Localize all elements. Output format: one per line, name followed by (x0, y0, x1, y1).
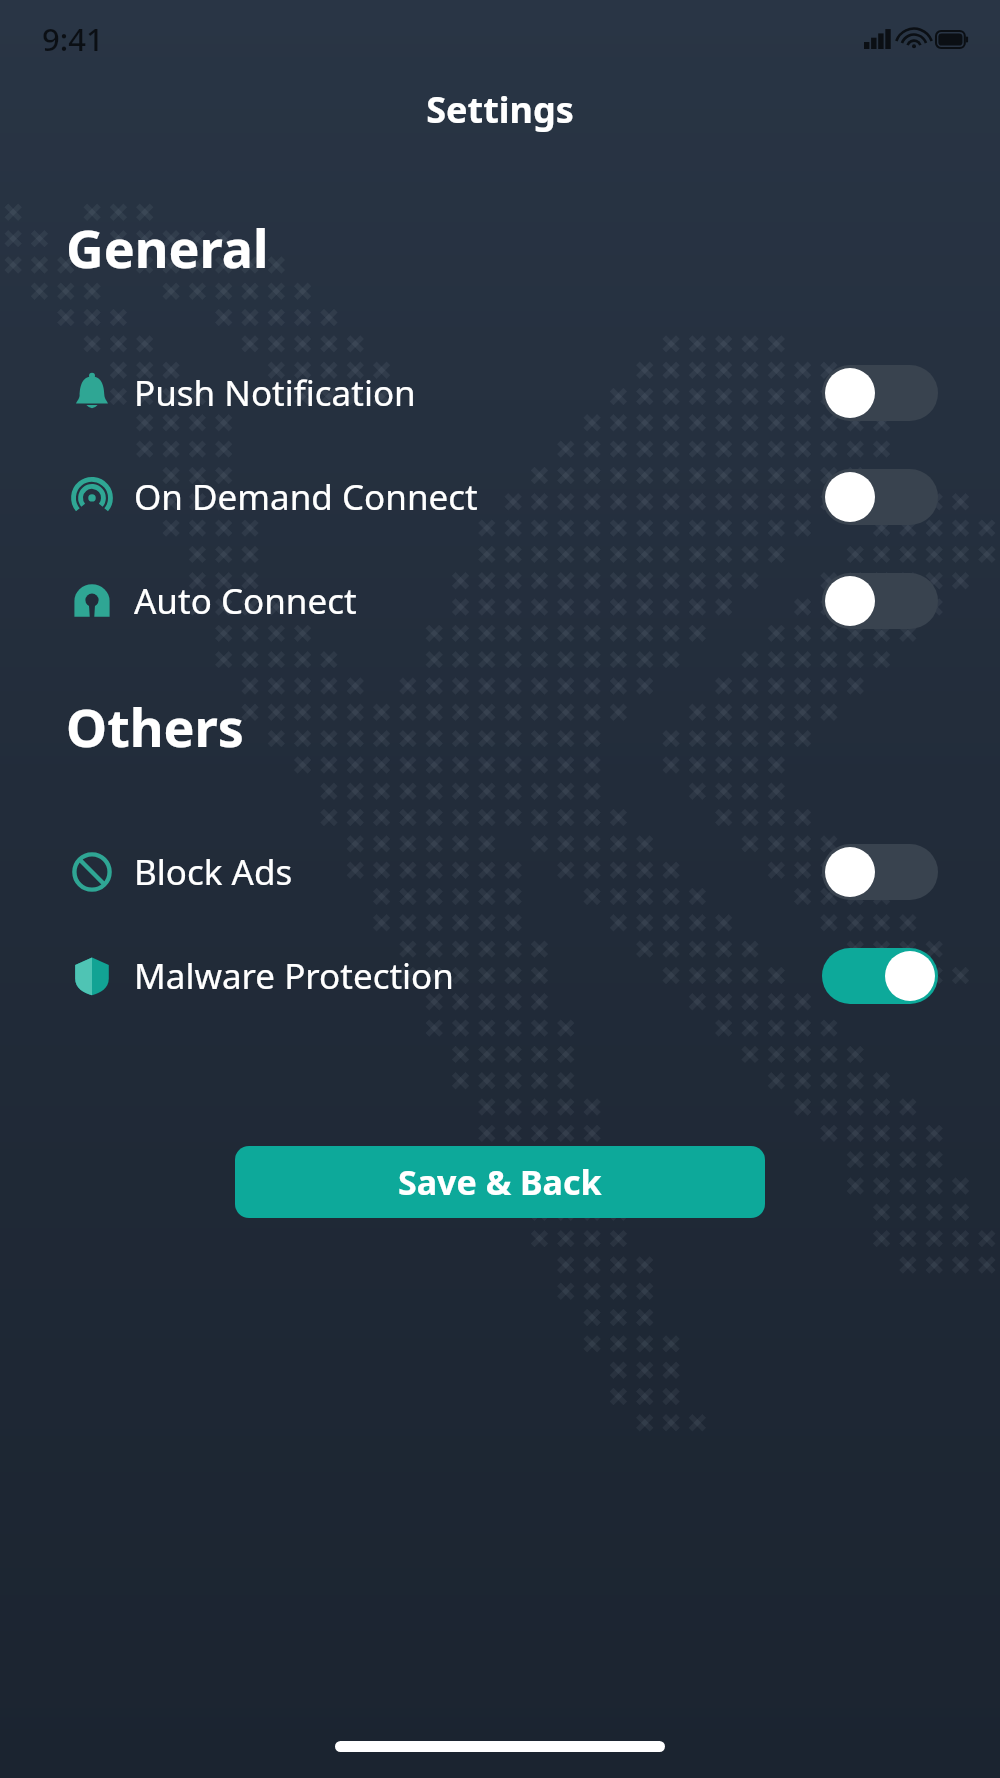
button[interactable]: Malware Protection (0, 924, 1000, 1028)
button[interactable] (822, 573, 938, 629)
staticText: On Demand Connect (134, 473, 478, 521)
button[interactable] (822, 948, 938, 1004)
staticText: Push Notification (134, 369, 416, 417)
button[interactable]: On Demand Connect (0, 445, 1000, 549)
button[interactable] (822, 844, 938, 900)
button[interactable]: Push Notification (0, 341, 1000, 445)
staticText: 9:41 (42, 18, 104, 60)
staticText: Others (66, 691, 244, 762)
staticText: Settings (426, 85, 574, 134)
staticText: Save & Back (398, 1159, 602, 1205)
staticText: Block Ads (134, 848, 293, 896)
staticText: General (66, 212, 269, 283)
button[interactable]: Block Ads (0, 820, 1000, 924)
staticText: Malware Protection (134, 952, 454, 1000)
button[interactable]: Auto Connect (0, 549, 1000, 653)
staticText: Auto Connect (134, 577, 357, 625)
button[interactable] (822, 365, 938, 421)
button[interactable] (822, 469, 938, 525)
button[interactable]: Save & Back (235, 1146, 765, 1218)
